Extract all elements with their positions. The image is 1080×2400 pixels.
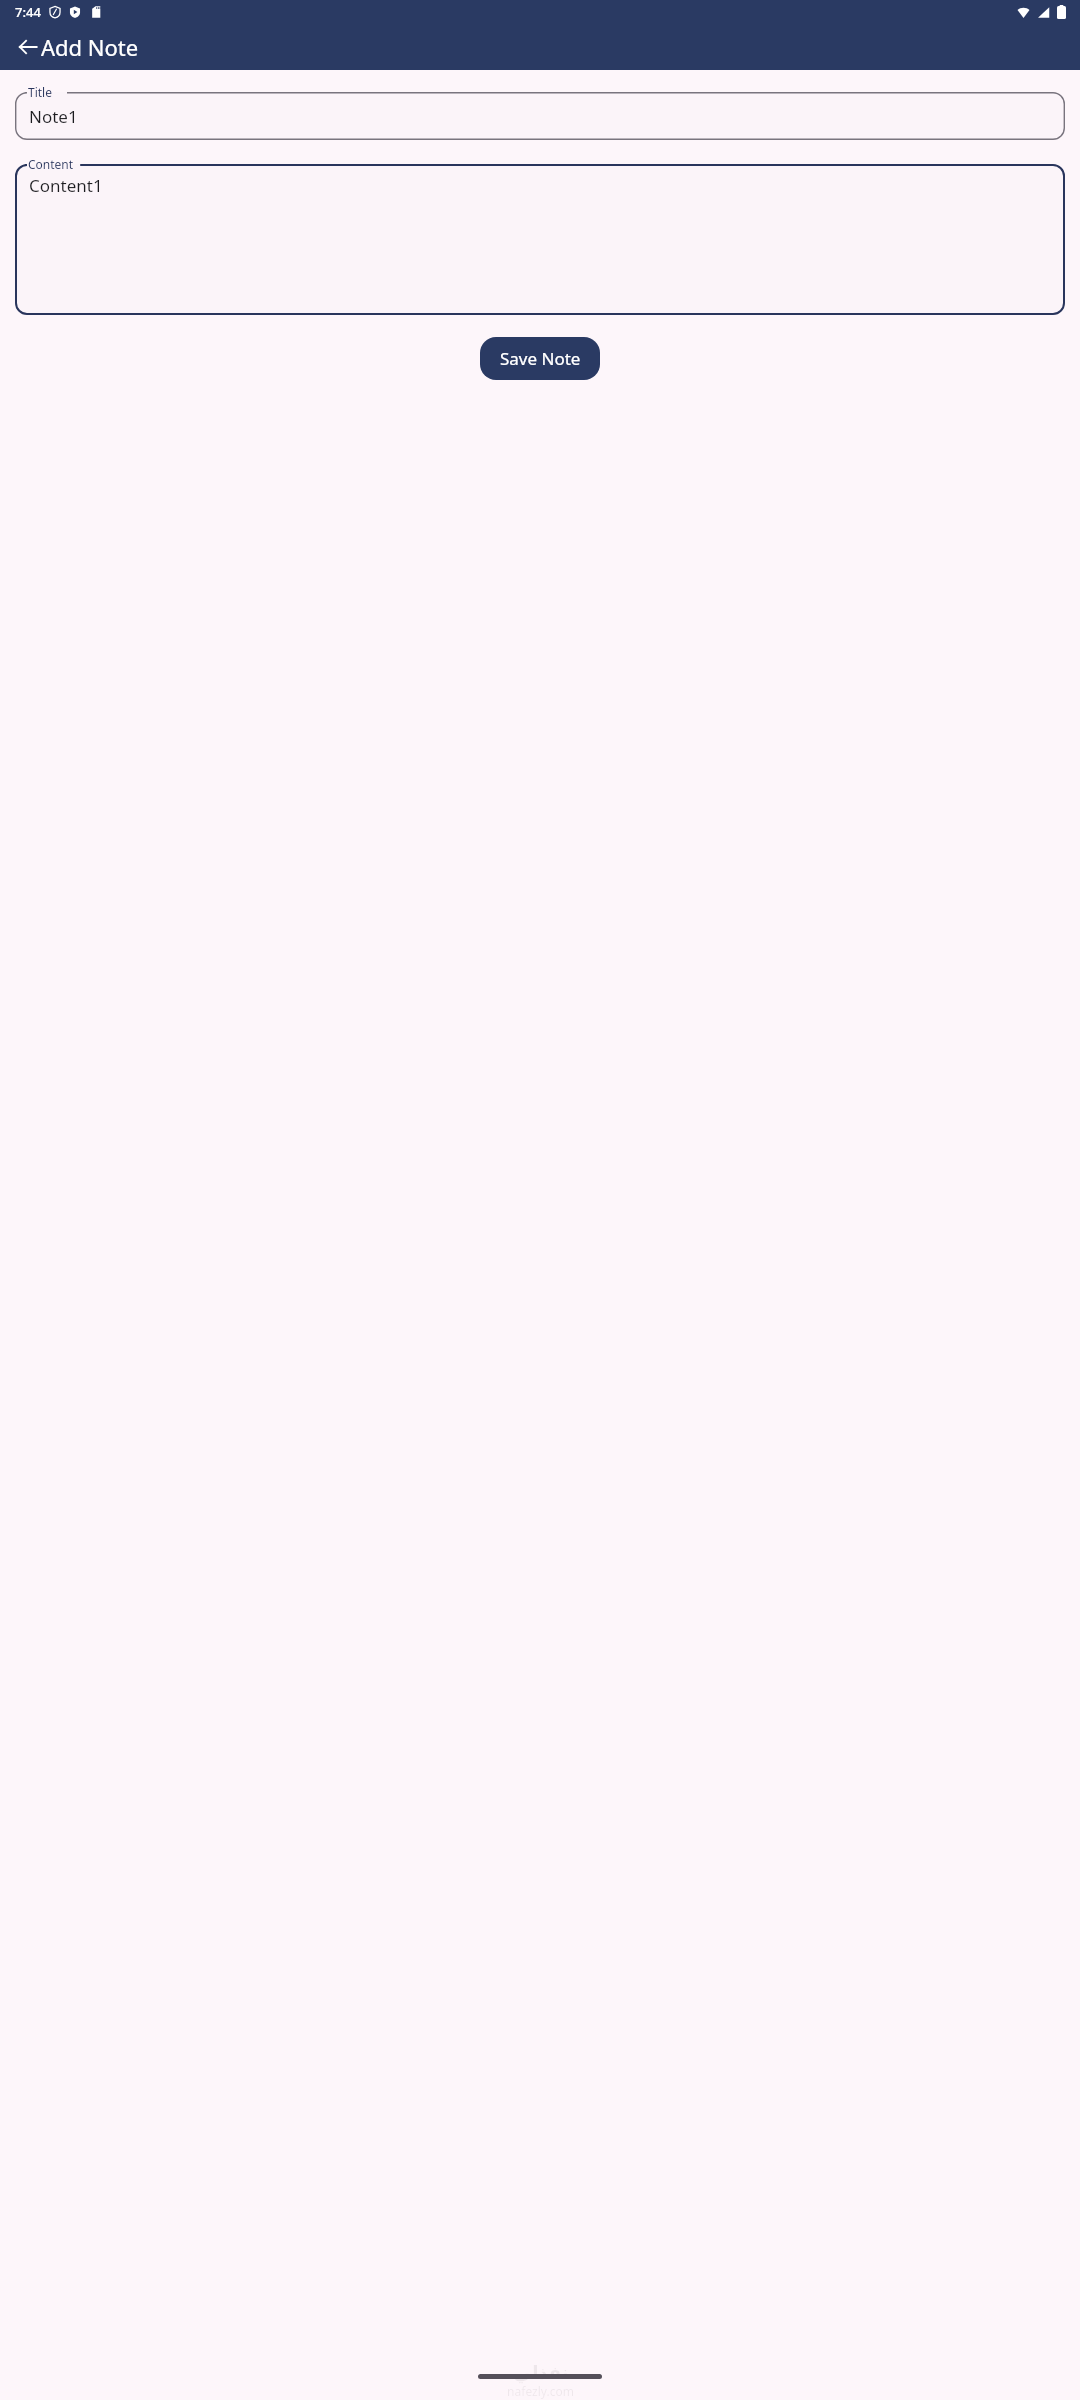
staticText: Note1 bbox=[29, 105, 78, 128]
staticText: Save Note bbox=[500, 347, 581, 370]
button[interactable]: Back bbox=[4, 23, 52, 70]
button[interactable] bbox=[15, 92, 1065, 140]
staticText: Content bbox=[28, 156, 74, 172]
button[interactable]: Save Note bbox=[480, 337, 600, 380]
staticText: Add Note bbox=[41, 32, 139, 62]
staticText: Content1 bbox=[29, 174, 103, 197]
staticText: نفذلي bbox=[513, 2362, 569, 2383]
staticText: nafezly.com bbox=[507, 2383, 574, 2399]
staticText: 7:44 bbox=[15, 3, 41, 21]
staticText: Title bbox=[28, 84, 52, 100]
button[interactable] bbox=[15, 164, 1065, 315]
